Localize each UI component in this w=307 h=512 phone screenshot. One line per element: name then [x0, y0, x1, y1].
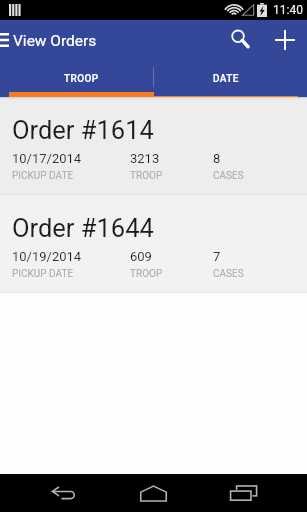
staticText: 7	[213, 249, 221, 264]
staticText: TROOP	[130, 268, 163, 280]
staticText: PICKUP DATE	[12, 170, 74, 182]
staticText: 609	[130, 249, 152, 264]
staticText: DATE	[213, 73, 239, 85]
staticText: 3213	[130, 151, 160, 166]
button[interactable]: Add order	[268, 20, 301, 57]
staticText: PICKUP DATE	[12, 268, 74, 280]
staticText: TROOP	[64, 73, 99, 85]
button[interactable]: Recent apps	[221, 478, 266, 508]
button[interactable]: Order #1644	[0, 195, 307, 292]
button[interactable]: Order #1614	[0, 97, 307, 194]
staticText: CASES	[213, 170, 244, 182]
staticText: View Orders	[13, 32, 97, 50]
staticText: 11:40	[273, 3, 303, 17]
staticText: 10/19/2014	[12, 249, 82, 264]
staticText: TROOP	[130, 170, 163, 182]
button[interactable]: TROOP	[9, 57, 153, 97]
staticText: Order #1644	[12, 213, 154, 243]
staticText: 10/17/2014	[12, 151, 82, 166]
button[interactable]: Back	[41, 478, 86, 508]
staticText: 8	[213, 151, 221, 166]
button[interactable]: Open navigation drawer	[0, 20, 12, 57]
button[interactable]: Search	[227, 20, 254, 57]
staticText: Order #1614	[12, 115, 154, 145]
staticText: CASES	[213, 268, 244, 280]
button[interactable]: Home	[131, 478, 176, 508]
button[interactable]: DATE	[153, 57, 298, 97]
